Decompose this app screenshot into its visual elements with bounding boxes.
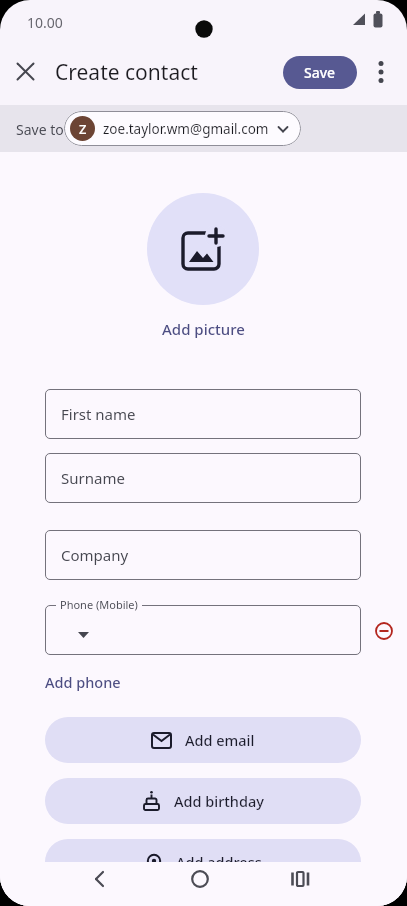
staticText: Add birthday bbox=[174, 791, 264, 811]
staticText: Add picture bbox=[162, 319, 245, 339]
button[interactable] bbox=[291, 871, 309, 887]
staticText: Add address bbox=[176, 852, 262, 872]
staticText: Z bbox=[79, 120, 87, 138]
button[interactable] bbox=[17, 63, 34, 80]
button[interactable] bbox=[191, 870, 209, 888]
staticText: Phone (Mobile) bbox=[60, 597, 138, 612]
staticText: Save bbox=[304, 63, 336, 82]
button[interactable] bbox=[147, 193, 259, 305]
button[interactable]: Add birthday bbox=[45, 778, 361, 824]
staticText: Create contact bbox=[55, 58, 198, 87]
button[interactable]: Add phone bbox=[45, 670, 121, 694]
staticText: Company bbox=[61, 545, 129, 565]
staticText: zoe.taylor.wm@gmail.com bbox=[103, 120, 269, 138]
button[interactable] bbox=[45, 605, 361, 655]
button[interactable]: Save bbox=[283, 56, 357, 89]
staticText: Add phone bbox=[45, 672, 121, 692]
button[interactable]: Z bbox=[64, 111, 301, 146]
button[interactable] bbox=[92, 871, 108, 887]
button[interactable]: Surname bbox=[45, 453, 361, 503]
staticText: First name bbox=[61, 404, 136, 424]
button[interactable] bbox=[375, 622, 393, 640]
staticText: Add email bbox=[185, 730, 255, 750]
button[interactable]: First name bbox=[45, 389, 361, 439]
staticText: 10.00 bbox=[27, 13, 63, 32]
button[interactable]: Company bbox=[45, 530, 361, 580]
button[interactable]: Add address bbox=[45, 839, 361, 885]
button[interactable]: Add email bbox=[45, 717, 361, 763]
button[interactable] bbox=[371, 54, 391, 98]
staticText: Save to bbox=[16, 120, 64, 139]
staticText: Surname bbox=[61, 468, 125, 488]
